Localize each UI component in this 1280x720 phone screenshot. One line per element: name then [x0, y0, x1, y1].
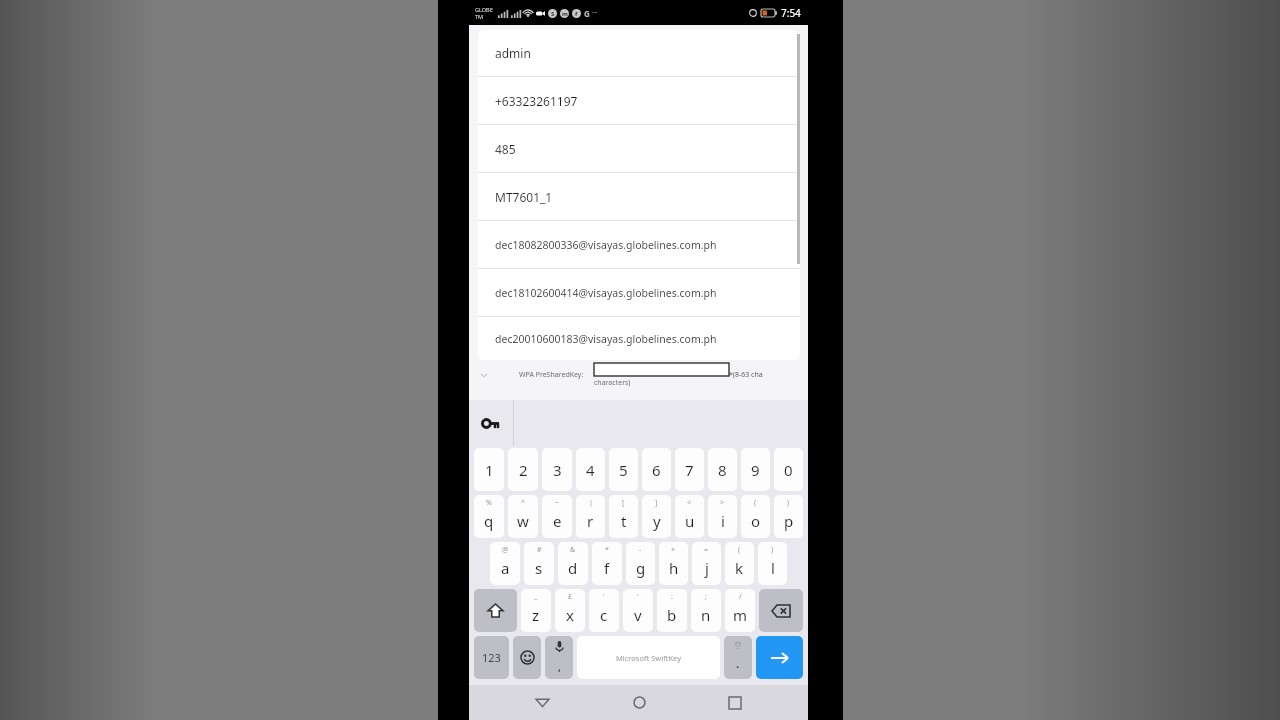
staticText: 9 [751, 460, 760, 480]
staticText: dec18102600414@visayas.globelines.com.ph [495, 286, 717, 300]
button[interactable]: | [576, 495, 605, 538]
staticText: Microsoft SwiftKey [616, 653, 681, 663]
button[interactable]: 123 [474, 636, 509, 679]
staticText: GLOBE [475, 6, 493, 13]
button[interactable]: Enter [756, 636, 803, 679]
staticText: S [551, 10, 555, 18]
staticText: + [671, 545, 676, 555]
button[interactable]: _ [521, 589, 551, 632]
button[interactable]: < [675, 495, 704, 538]
button[interactable]: 5 [609, 448, 638, 491]
button[interactable]: dec18082800336@visayas.globelines.com.ph [478, 221, 800, 268]
button[interactable]: # [524, 542, 554, 585]
staticText: a [501, 558, 510, 578]
staticText: s [535, 558, 543, 578]
staticText: v [634, 605, 642, 625]
staticText: m [733, 605, 748, 625]
staticText: 1 [485, 460, 494, 480]
staticText: e [553, 511, 562, 531]
button[interactable]: % [474, 495, 504, 538]
button[interactable]: 7 [675, 448, 704, 491]
button[interactable]: 3 [542, 448, 572, 491]
button[interactable]: 4 [576, 448, 605, 491]
staticText: f [575, 10, 578, 18]
button[interactable]: & [558, 542, 588, 585]
staticText: 5 [619, 460, 628, 480]
button[interactable]: Voice input [545, 636, 573, 679]
button[interactable]: ^ [508, 495, 538, 538]
button[interactable]: 9 [741, 448, 770, 491]
button[interactable]: Space [577, 636, 720, 679]
button[interactable]: + [659, 542, 688, 585]
staticText: 4 [586, 460, 595, 480]
button[interactable]: / [725, 589, 755, 632]
staticText: admin [495, 45, 531, 61]
button[interactable]: ; [691, 589, 721, 632]
button[interactable]: 0 [774, 448, 803, 491]
button[interactable]: 485 [478, 125, 800, 172]
staticText: * [605, 545, 609, 555]
staticText: i [721, 511, 725, 531]
button[interactable]: [ [609, 495, 638, 538]
button[interactable]: @ [490, 542, 520, 585]
staticText: r [587, 511, 594, 531]
staticText: # [537, 545, 542, 555]
button[interactable]: Back [519, 685, 565, 720]
button[interactable]: Backspace [759, 589, 803, 632]
button[interactable]: - [626, 542, 655, 585]
button[interactable]: dec20010600183@visayas.globelines.com.ph [478, 317, 800, 360]
staticText: z [532, 605, 540, 625]
staticText: % [486, 498, 492, 508]
staticText: WPA PreSharedKey: [519, 370, 584, 380]
button[interactable]: ' [623, 589, 653, 632]
staticText: 2 [519, 460, 528, 480]
button[interactable]: > [708, 495, 737, 538]
button[interactable]: ) [774, 495, 803, 538]
button[interactable]: Recents [712, 685, 758, 720]
staticText: ) [787, 498, 790, 508]
staticText: f [604, 558, 610, 578]
button[interactable]: admin [478, 30, 800, 76]
button[interactable]: Emoji [513, 636, 541, 679]
staticText: 3 [553, 460, 562, 480]
button[interactable]: 8 [708, 448, 737, 491]
staticText: g [636, 558, 646, 578]
button[interactable]: £ [555, 589, 585, 632]
button[interactable]: ' [589, 589, 619, 632]
button[interactable]: ) [758, 542, 787, 585]
staticText: ' [603, 592, 605, 602]
staticText: 123 [482, 650, 501, 665]
staticText: u [685, 511, 695, 531]
staticText: ] [655, 498, 658, 508]
staticText: n [701, 605, 711, 625]
button[interactable]: dec18102600414@visayas.globelines.com.ph [478, 269, 800, 316]
button[interactable]: MT7601_1 [478, 173, 800, 220]
button[interactable]: 6 [642, 448, 671, 491]
button[interactable]: * [592, 542, 622, 585]
staticText: ^ [521, 498, 526, 508]
button[interactable]: ( [725, 542, 754, 585]
button[interactable]: 1 [474, 448, 504, 491]
staticText: *(8-63 cha [729, 370, 763, 380]
staticText: ( [738, 545, 741, 555]
staticText: ··· [592, 8, 598, 18]
button[interactable]: Password suggestions [469, 400, 513, 446]
button[interactable]: !? [724, 636, 752, 679]
staticText: h [669, 558, 679, 578]
button[interactable]: Home [616, 685, 662, 720]
button[interactable]: : [657, 589, 687, 632]
button[interactable]: 2 [508, 448, 538, 491]
button[interactable]: +63323261197 [478, 77, 800, 124]
staticText: o [751, 511, 761, 531]
staticText: [ [622, 498, 625, 508]
button[interactable]: Shift [474, 589, 517, 632]
staticText: b [667, 605, 677, 625]
button[interactable]: ~ [542, 495, 572, 538]
staticText: characters) [594, 378, 631, 388]
button[interactable]: = [692, 542, 721, 585]
staticText: ~ [555, 498, 560, 508]
staticText: £ [568, 592, 573, 602]
staticText: TM [475, 13, 484, 20]
button[interactable]: ( [741, 495, 770, 538]
button[interactable]: ] [642, 495, 671, 538]
